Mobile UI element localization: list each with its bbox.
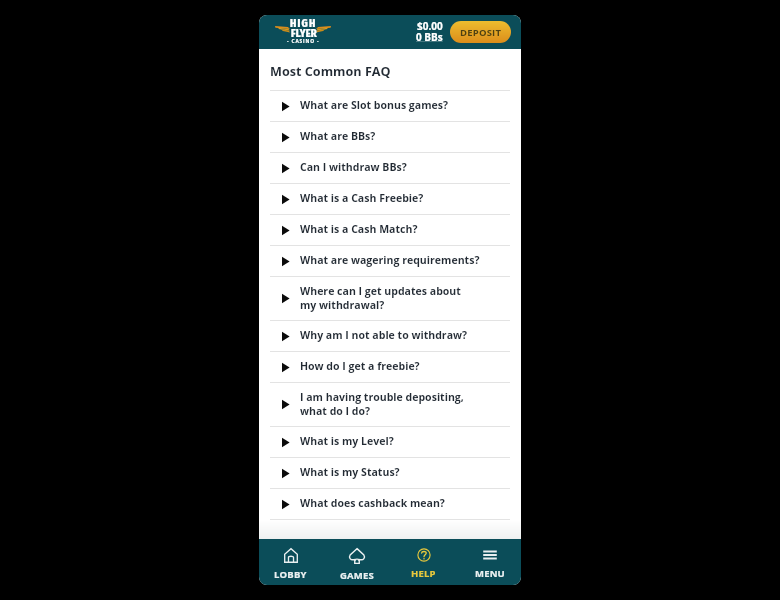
button[interactable]: Menu [459, 539, 521, 585]
staticText: What is my Level? [300, 434, 394, 448]
button[interactable]: Games [326, 539, 388, 585]
button[interactable]: What is my Status? [270, 458, 510, 488]
staticText: DEPOSIT [460, 26, 502, 39]
button[interactable]: DEPOSIT [450, 21, 511, 43]
staticText: HELP [411, 567, 436, 580]
staticText: What is my Status? [300, 465, 400, 479]
staticText: MENU [475, 567, 505, 580]
button[interactable]: Why am I not able to withdraw? [270, 321, 510, 351]
staticText: What is a Cash Freebie? [300, 191, 424, 205]
staticText: How do I get a freebie? [300, 359, 420, 373]
button[interactable]: Lobby [259, 539, 321, 585]
button[interactable]: What does cashback mean? [270, 489, 510, 519]
staticText: Where can I get updates about [300, 284, 461, 298]
button[interactable]: What are Slot bonus games? [270, 91, 510, 121]
button[interactable]: Help [392, 539, 454, 585]
staticText: LOBBY [274, 568, 307, 581]
staticText: HIGH [290, 17, 317, 27]
button[interactable]: What are wagering requirements? [270, 246, 510, 276]
staticText: I am having trouble depositing, [300, 390, 464, 404]
button[interactable]: Can I withdraw BBs? [270, 153, 510, 183]
staticText: my withdrawal? [300, 298, 385, 312]
button[interactable]: What is a Cash Match? [270, 215, 510, 245]
staticText: What is a Cash Match? [300, 222, 418, 236]
staticText: What does cashback mean? [300, 496, 445, 510]
staticText: FLYER [291, 27, 317, 37]
button[interactable]: What are BBs? [270, 122, 510, 152]
button[interactable]: How do I get a freebie? [270, 352, 510, 382]
staticText: What are BBs? [300, 129, 376, 143]
staticText: Can I withdraw BBs? [300, 160, 407, 174]
staticText: GAMES [340, 569, 374, 582]
staticText: Why am I not able to withdraw? [300, 328, 468, 342]
staticText: - CASINO - [287, 38, 320, 45]
staticText: What are Slot bonus games? [300, 98, 449, 112]
button[interactable]: What is my Level? [270, 427, 510, 457]
staticText: $0.00 [417, 19, 443, 30]
button[interactable]: I am having trouble depositing, [270, 383, 510, 426]
button[interactable]: What is a Cash Freebie? [270, 184, 510, 214]
staticText: Most Common FAQ [270, 62, 391, 79]
staticText: What are wagering requirements? [300, 253, 480, 267]
button[interactable]: Where can I get updates about [270, 277, 510, 320]
staticText: 0 BBs [416, 30, 443, 44]
staticText: what do I do? [300, 404, 371, 418]
